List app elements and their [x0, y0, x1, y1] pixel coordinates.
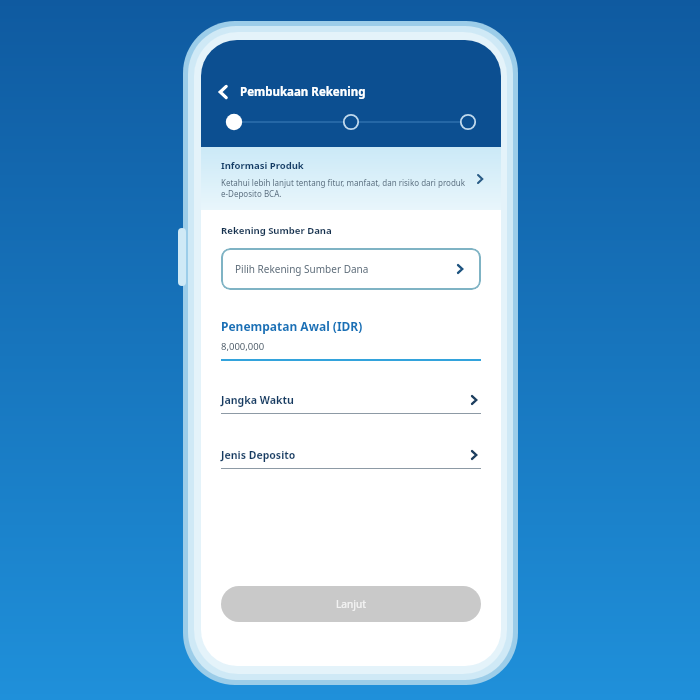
staticText: 8,000,000: [221, 340, 265, 353]
button[interactable]: Back: [209, 78, 370, 106]
button[interactable]: Informasi Produk: [201, 147, 501, 210]
button[interactable]: Pilih Rekening Sumber Dana: [221, 248, 481, 290]
staticText: Informasi Produk: [221, 159, 304, 172]
staticText: Ketahui lebih lanjut tentang fitur, manf…: [221, 177, 467, 199]
staticText: Penempatan Awal (IDR): [221, 318, 363, 334]
other: Back: [213, 82, 233, 102]
button[interactable]: Jangka Waktu: [221, 393, 481, 414]
staticText: Jangka Waktu: [221, 393, 467, 407]
staticText: Jenis Deposito: [221, 448, 467, 462]
button[interactable]: Lanjut: [221, 586, 481, 622]
staticText: Pembukaan Rekening: [240, 84, 366, 100]
staticText: Pilih Rekening Sumber Dana: [235, 262, 453, 276]
button[interactable]: Jenis Deposito: [221, 448, 481, 469]
staticText: Rekening Sumber Dana: [221, 224, 332, 237]
staticText: Lanjut: [336, 597, 367, 611]
